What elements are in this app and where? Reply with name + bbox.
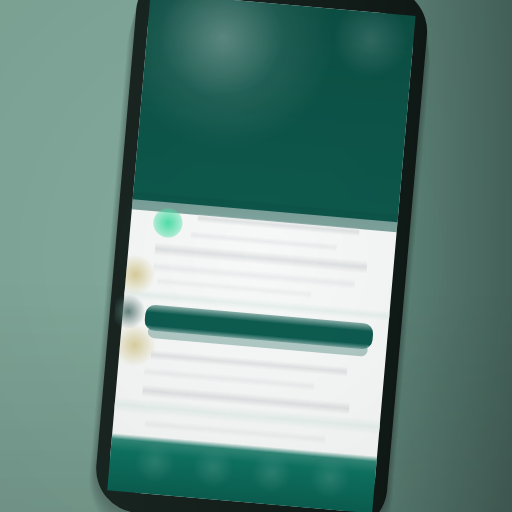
button[interactable]: Settings — [384, 456, 512, 512]
button[interactable]: Friday — [0, 366, 512, 430]
button[interactable]: Home — [0, 456, 128, 512]
staticText: Radar — [305, 477, 336, 492]
staticText: Showers — [66, 400, 114, 416]
staticText: Settings — [427, 477, 469, 492]
staticText: Wednesday — [66, 252, 149, 272]
staticText: Friday — [66, 380, 111, 400]
button[interactable]: Forecast — [128, 456, 256, 512]
staticText: Tomorrow — [66, 188, 140, 208]
staticText: Cloudy — [66, 336, 105, 352]
staticText: Weather — [68, 42, 150, 69]
staticText: Thursday — [66, 316, 133, 336]
button[interactable]: Thursday — [0, 302, 512, 366]
button[interactable]: Menu — [0, 0, 512, 110]
staticText: Partly cloudy — [66, 144, 139, 160]
button[interactable]: Today — [0, 110, 512, 174]
button[interactable]: Wednesday — [0, 238, 512, 302]
button[interactable]: Radar — [256, 456, 384, 512]
staticText: Forecast — [170, 477, 214, 492]
button[interactable]: Tomorrow — [0, 174, 512, 238]
staticText: Light rain — [66, 208, 120, 224]
